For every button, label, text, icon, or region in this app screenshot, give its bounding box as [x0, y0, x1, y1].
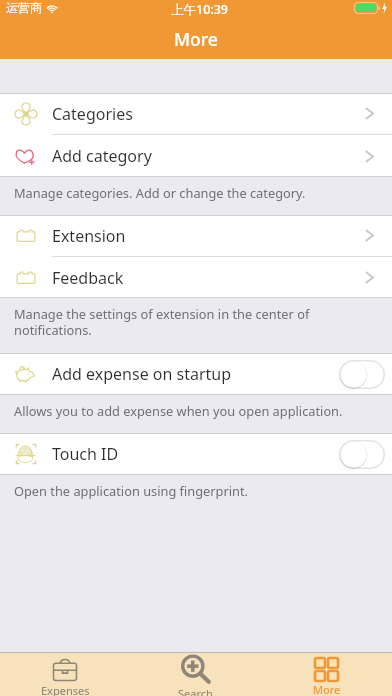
button[interactable]: Categories	[0, 93, 392, 134]
staticText: Extension	[52, 225, 126, 247]
button[interactable]: Feedback	[0, 257, 392, 298]
staticText: More	[313, 682, 341, 696]
button[interactable]: Expenses	[0, 653, 130, 696]
button[interactable]: Toggle setting	[339, 360, 385, 389]
button[interactable]: Add expense on startup	[0, 353, 392, 395]
staticText: Manage categories. Add or change the cat…	[14, 184, 306, 201]
staticText: Categories	[52, 103, 133, 125]
staticText: Search	[178, 686, 213, 696]
staticText: Open the application using fingerprint.	[14, 482, 248, 499]
staticText: Touch ID	[52, 443, 119, 465]
button[interactable]: Search	[130, 653, 261, 696]
button[interactable]: Add category	[0, 135, 392, 177]
staticText: Manage the settings of extension in the …	[14, 305, 310, 339]
staticText: Add category	[52, 145, 152, 167]
staticText: Feedback	[52, 267, 124, 289]
button[interactable]: Extension	[0, 215, 392, 256]
button[interactable]: Touch ID	[0, 433, 392, 475]
staticText: Add expense on startup	[52, 363, 232, 385]
staticText: Allows you to add expense when you open …	[14, 402, 343, 419]
staticText: 上午10:39	[171, 1, 229, 18]
button[interactable]: Toggle setting	[339, 440, 385, 469]
button[interactable]: More	[261, 653, 392, 696]
staticText: Expenses	[41, 683, 90, 696]
staticText: 运营商	[6, 0, 42, 15]
staticText: More	[174, 27, 218, 51]
